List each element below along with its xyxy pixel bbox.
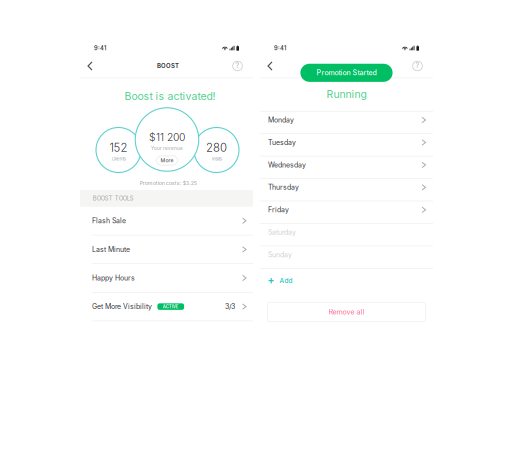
staticText: Thursday [268,183,299,192]
staticText: BOOST [157,62,179,69]
staticText: Sunday [268,250,292,259]
staticText: Wednesday [268,161,306,169]
staticText: More [160,157,173,164]
button[interactable]: Get More Visibility [80,293,253,321]
button[interactable]: Monday [260,111,433,134]
staticText: Clients [111,156,125,162]
staticText: ACTIVE [163,304,179,309]
staticText: 280 [206,141,227,154]
staticText: 3/3 [225,302,235,311]
staticText: Saturday [268,228,296,236]
staticText: 9:41 [274,44,286,52]
button[interactable]: Remove all [267,302,425,322]
button[interactable]: Saturday [260,224,433,246]
staticText: Add [279,277,292,285]
staticText: 152 [109,141,127,154]
staticText: Promotion Started [316,68,376,77]
button[interactable]: Sunday [260,246,433,269]
staticText: Friday [268,206,289,214]
staticText: Flash Sale [92,217,126,225]
staticText: Visits [211,156,221,162]
staticText: ? [235,62,239,70]
button[interactable]: Last Minute [80,235,253,264]
staticText: Monday [268,116,294,124]
staticText: Boost is activated! [124,90,215,103]
staticText: Tuesday [268,138,296,147]
staticText: $11 200 [149,131,185,143]
button[interactable]: Back [262,58,278,74]
staticText: Running [326,88,366,100]
staticText: ? [415,62,419,70]
button[interactable]: Wednesday [260,156,433,179]
button[interactable]: Happy Hours [80,264,253,293]
button[interactable]: Promotion Started [300,64,393,82]
button[interactable]: More [156,156,177,165]
staticText: 9:41 [94,44,106,52]
staticText: Get More Visibility [92,302,152,311]
button[interactable]: Back [82,58,98,74]
button[interactable]: Thursday [260,179,433,201]
staticText: Last Minute [92,245,130,254]
staticText: Remove all [328,308,364,316]
button[interactable]: Tuesday [260,134,433,156]
staticText: Your revenue [151,145,183,151]
button[interactable]: Help [229,58,245,74]
button[interactable]: Add [260,269,433,292]
button[interactable]: Flash Sale [80,207,253,235]
button[interactable]: Help [409,58,425,74]
staticText: BOOST TOOLS [93,195,134,202]
button[interactable]: Friday [260,201,433,224]
staticText: Promotion costs: $3.25 [140,180,197,186]
staticText: Happy Hours [92,274,135,282]
